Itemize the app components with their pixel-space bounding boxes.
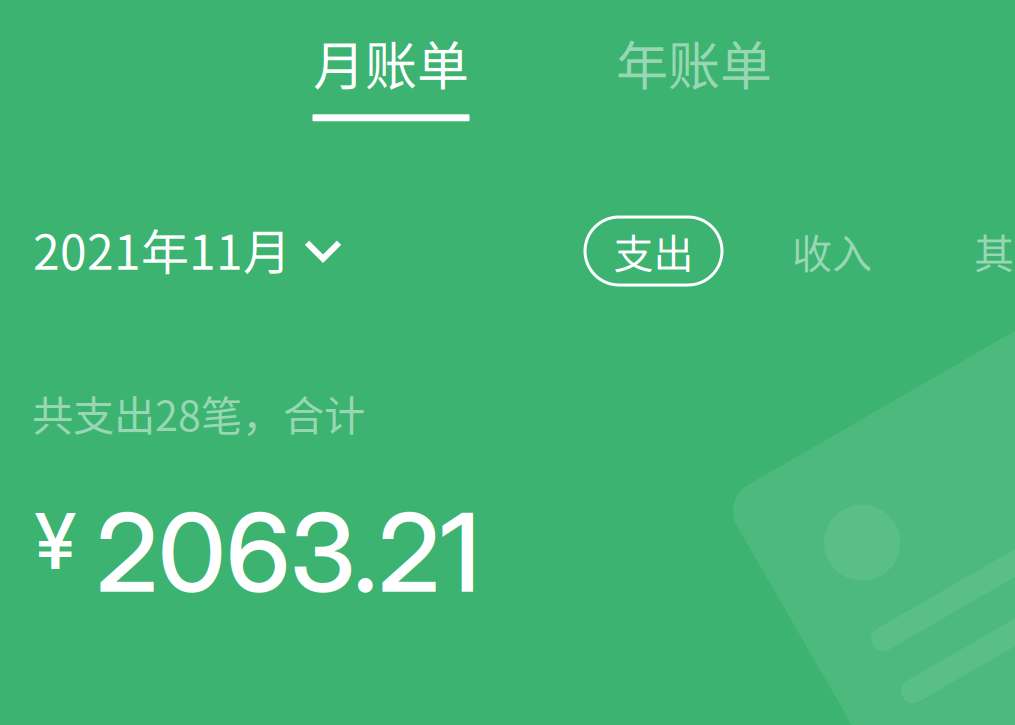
staticText: 月账单 [313, 25, 469, 100]
staticText: 收入 [792, 222, 872, 280]
staticText: 2021年11月 [33, 214, 291, 283]
button[interactable]: 收入 [792, 217, 872, 285]
staticText: 年账单 [616, 25, 772, 100]
staticText: 2063.21 [96, 487, 480, 618]
button[interactable]: 其他 [974, 217, 1015, 285]
button[interactable]: 年账单 [594, 25, 794, 100]
button[interactable]: 2021年11月 [33, 214, 342, 283]
staticText: 共支出28笔，合计 [32, 383, 365, 443]
button[interactable]: 支出 [585, 217, 722, 285]
button[interactable]: 月账单 [291, 25, 491, 121]
staticText: ¥ [35, 494, 76, 588]
staticText: 支出 [613, 222, 693, 280]
staticText: 其他 [974, 222, 1015, 280]
